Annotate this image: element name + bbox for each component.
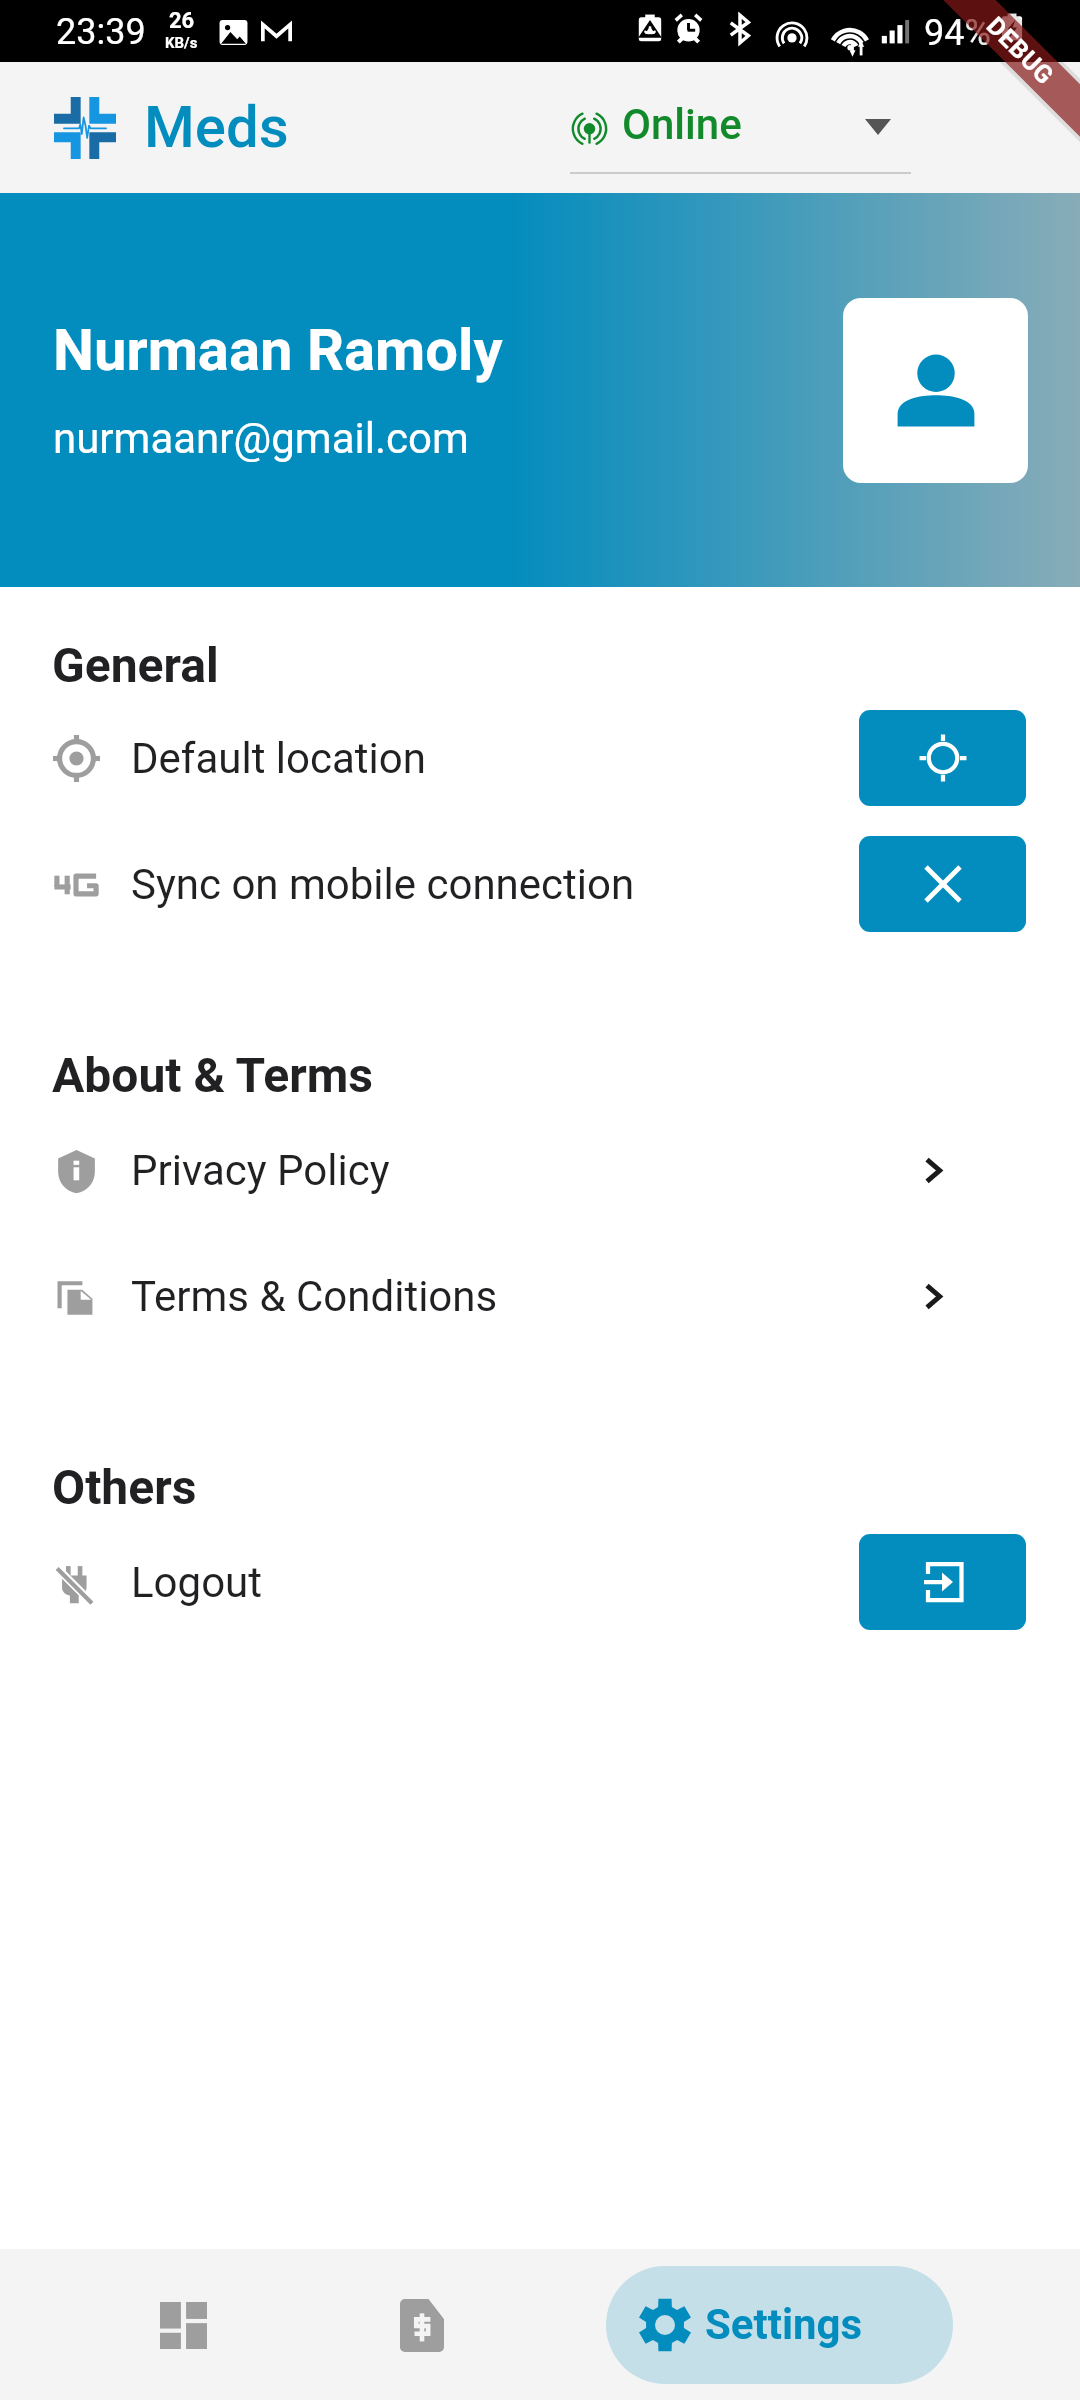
button[interactable]: Dashboard	[118, 2260, 248, 2390]
button[interactable]: Privacy Policy	[0, 1107, 1080, 1233]
staticText: 94%	[924, 12, 991, 54]
button[interactable]: Sync on mobile connection	[0, 821, 1080, 947]
button[interactable]: Logout	[0, 1519, 1080, 1645]
staticText: About & Terms	[52, 1047, 373, 1103]
button[interactable]: Meds home	[30, 74, 330, 180]
button[interactable]: Online	[570, 62, 911, 193]
staticText: Sync on mobile connection	[131, 860, 635, 909]
staticText: General	[52, 637, 219, 693]
staticText: Others	[52, 1459, 197, 1515]
button[interactable]: Profile photo	[843, 298, 1028, 483]
staticText: Logout	[131, 1558, 263, 1607]
staticText: 23:39	[56, 11, 146, 53]
staticText: Online	[622, 100, 742, 149]
staticText: Default location	[131, 734, 426, 783]
button[interactable]: Open terms and conditions	[859, 1248, 1026, 1344]
button[interactable]: Set default location	[859, 710, 1026, 806]
staticText: nurmaanr@gmail.com	[53, 414, 469, 463]
button[interactable]: Terms & Conditions	[0, 1233, 1080, 1359]
staticText: Nurmaan Ramoly	[53, 316, 503, 384]
staticText: Settings	[705, 2300, 863, 2349]
staticText: 26	[169, 8, 195, 34]
button[interactable]: Open privacy policy	[859, 1122, 1026, 1218]
staticText: KB/s	[165, 34, 198, 52]
button[interactable]: Settings	[606, 2266, 953, 2384]
button[interactable]: Default location	[0, 695, 1080, 821]
button[interactable]: Logout	[859, 1534, 1026, 1630]
staticText: Privacy Policy	[131, 1146, 390, 1195]
button[interactable]: Turn off sync on mobile connection	[859, 836, 1026, 932]
staticText: DEBUG	[981, 11, 1060, 91]
staticText: Meds	[144, 93, 289, 161]
staticText: Terms & Conditions	[131, 1272, 498, 1321]
button[interactable]: Invoices	[357, 2260, 487, 2390]
